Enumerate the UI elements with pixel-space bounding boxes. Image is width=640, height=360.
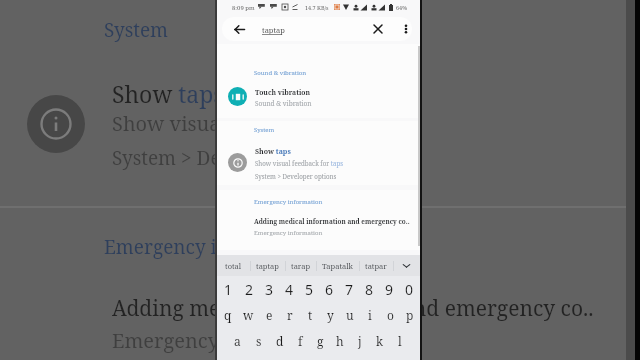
- staticText: p: [406, 307, 414, 323]
- staticText: e: [266, 307, 273, 323]
- button[interactable]: 3: [259, 276, 279, 302]
- button[interactable]: t: [300, 302, 320, 328]
- staticText: k: [376, 333, 384, 349]
- button[interactable]: 5: [299, 276, 319, 302]
- button[interactable]: 0: [399, 276, 419, 302]
- staticText: System: [104, 17, 169, 43]
- button[interactable]: Expand suggestions: [393, 255, 420, 276]
- staticText: s: [256, 333, 262, 349]
- staticText: 9: [385, 280, 394, 299]
- staticText: q: [224, 307, 232, 323]
- staticText: Show visual feedback for taps: [255, 159, 343, 167]
- staticText: a: [234, 333, 241, 349]
- staticText: taptap: [256, 261, 279, 271]
- button[interactable]: Tapatalk: [316, 255, 359, 276]
- staticText: Show visual feedback for taps: [112, 110, 397, 137]
- staticText: d: [276, 333, 284, 349]
- button[interactable]: [217, 80, 420, 116]
- staticText: Show taps: [255, 147, 291, 157]
- staticText: total: [225, 261, 242, 271]
- button[interactable]: [217, 206, 420, 240]
- button[interactable]: p: [400, 302, 420, 328]
- staticText: 8:09 pm: [232, 4, 255, 12]
- staticText: r: [287, 307, 293, 323]
- staticText: 0: [405, 280, 414, 299]
- button[interactable]: Clear search: [366, 17, 390, 41]
- button[interactable]: [217, 138, 420, 184]
- staticText: System > Developer options: [255, 172, 337, 180]
- staticText: 64%: [396, 4, 408, 11]
- staticText: 14.7 KB/s: [305, 4, 329, 11]
- staticText: Emergency information: [112, 327, 340, 354]
- button[interactable]: 7: [339, 276, 359, 302]
- staticText: tatpar: [365, 261, 387, 271]
- button[interactable]: 1: [218, 276, 239, 302]
- staticText: h: [336, 333, 344, 349]
- button[interactable]: 9: [379, 276, 399, 302]
- staticText: o: [387, 307, 394, 323]
- button[interactable]: total: [217, 255, 250, 276]
- staticText: l: [398, 333, 402, 349]
- staticText: t: [308, 307, 313, 323]
- staticText: Adding medical information and emergency…: [254, 217, 410, 226]
- button[interactable]: e: [259, 302, 280, 328]
- staticText: Adding medical information and emergency…: [112, 294, 594, 323]
- staticText: 8: [365, 280, 374, 299]
- button[interactable]: More options: [394, 17, 412, 41]
- button[interactable]: o: [380, 302, 400, 328]
- button[interactable]: q: [217, 302, 238, 328]
- staticText: taptap: [262, 25, 285, 35]
- staticText: System: [254, 126, 275, 134]
- button[interactable]: 2: [239, 276, 259, 302]
- staticText: u: [346, 307, 354, 323]
- staticText: Sound & vibration: [255, 99, 312, 108]
- staticText: 2: [245, 280, 254, 299]
- button[interactable]: Back: [227, 17, 251, 41]
- staticText: 3: [265, 280, 274, 299]
- staticText: System > Developer options: [112, 145, 362, 171]
- button[interactable]: j: [350, 328, 370, 354]
- staticText: tarap: [291, 261, 311, 271]
- staticText: g: [317, 333, 324, 349]
- button[interactable]: g: [310, 328, 330, 354]
- button[interactable]: w: [238, 302, 259, 328]
- button[interactable]: h: [330, 328, 350, 354]
- staticText: 4: [285, 280, 294, 299]
- button[interactable]: y: [320, 302, 340, 328]
- staticText: Touch vibration: [255, 88, 311, 97]
- button[interactable]: i: [360, 302, 380, 328]
- button[interactable]: tarap: [285, 255, 316, 276]
- button[interactable]: 6: [319, 276, 339, 302]
- staticText: Emergency information: [254, 198, 323, 206]
- button[interactable]: taptap: [250, 255, 285, 276]
- button[interactable]: s: [248, 328, 269, 354]
- staticText: Emergency information: [254, 229, 323, 237]
- button[interactable]: tatpar: [359, 255, 393, 276]
- staticText: f: [298, 333, 303, 349]
- button[interactable]: d: [269, 328, 290, 354]
- staticText: Tapatalk: [322, 261, 353, 271]
- button[interactable]: u: [340, 302, 360, 328]
- staticText: i: [368, 307, 372, 323]
- staticText: Show taps: [112, 78, 224, 109]
- staticText: Emergency information: [104, 234, 321, 260]
- staticText: y: [327, 307, 334, 323]
- button[interactable]: r: [280, 302, 300, 328]
- staticText: Sound & vibration: [254, 69, 307, 77]
- button[interactable]: a: [227, 328, 248, 354]
- staticText: 5: [305, 280, 314, 299]
- staticText: 1: [224, 280, 233, 299]
- button[interactable]: l: [390, 328, 410, 354]
- button[interactable]: k: [370, 328, 390, 354]
- button[interactable]: f: [290, 328, 310, 354]
- staticText: 7: [345, 280, 354, 299]
- staticText: w: [243, 307, 254, 323]
- button[interactable]: 8: [359, 276, 379, 302]
- button[interactable]: 4: [279, 276, 299, 302]
- staticText: 6: [325, 280, 334, 299]
- staticText: j: [358, 333, 362, 349]
